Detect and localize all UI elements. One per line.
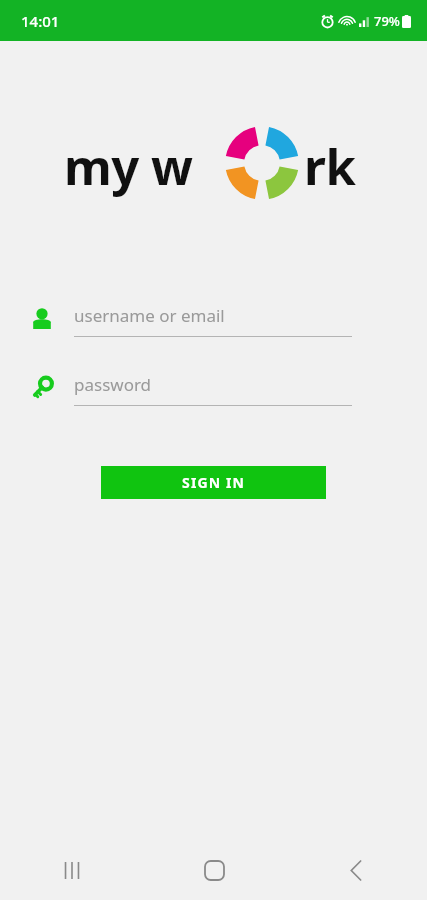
button[interactable]: password	[74, 367, 352, 415]
other: Password	[28, 374, 56, 402]
staticText: password	[74, 373, 152, 396]
staticText: 14:01	[21, 11, 60, 31]
button[interactable]: SIGN IN	[101, 466, 326, 499]
button[interactable]: username or email	[74, 298, 352, 346]
button[interactable]: Home	[143, 840, 285, 900]
staticText: my w	[64, 133, 193, 200]
button[interactable]: Back	[285, 840, 427, 900]
button[interactable]: Recents	[0, 840, 143, 900]
staticText: rk	[304, 133, 356, 200]
staticText: SIGN IN	[182, 473, 245, 492]
staticText: 79%	[374, 12, 400, 30]
other: Username	[28, 305, 56, 333]
staticText: username or email	[74, 304, 225, 327]
